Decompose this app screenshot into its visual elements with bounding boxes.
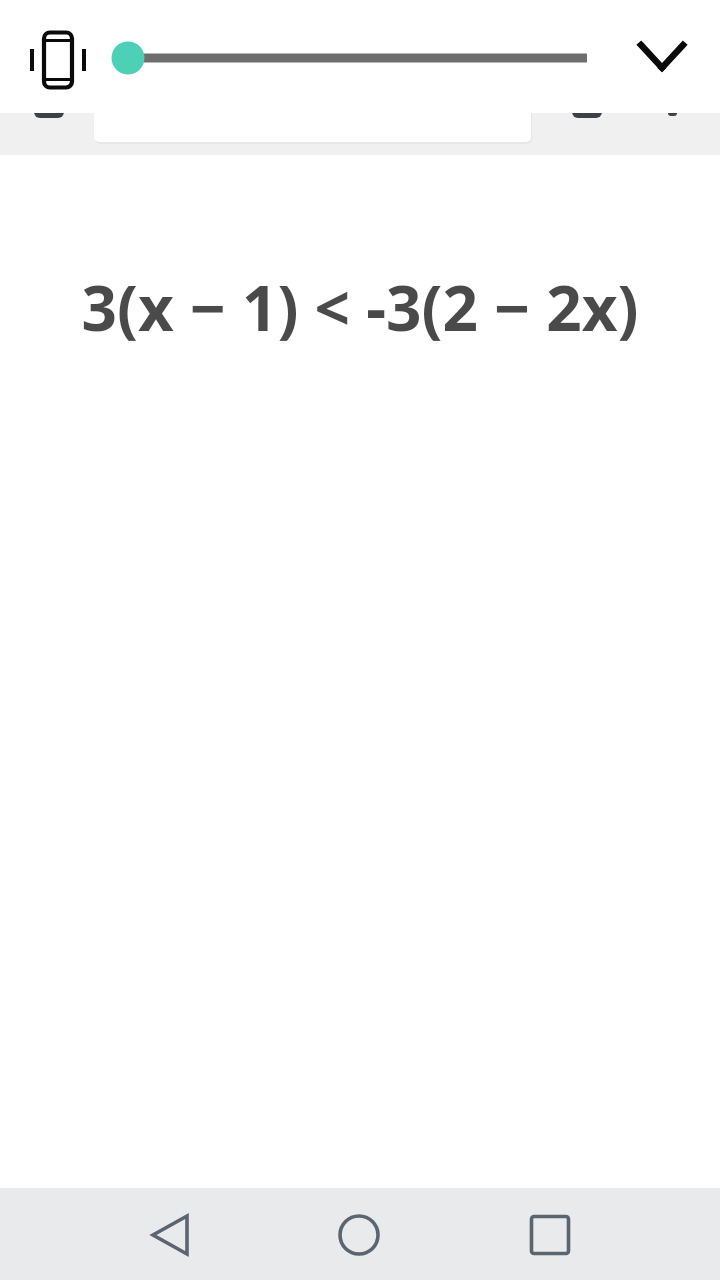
button[interactable]: Vibration — [14, 16, 102, 104]
button[interactable]: Recent apps — [502, 1189, 598, 1280]
button[interactable]: Collapse — [620, 16, 704, 100]
button[interactable]: Home — [311, 1189, 407, 1280]
button[interactable]: Back — [122, 1189, 218, 1280]
button[interactable]: Vibration intensity — [108, 30, 608, 86]
staticText: 3(x − 1) < -3(2 − 2x) — [0, 265, 720, 349]
